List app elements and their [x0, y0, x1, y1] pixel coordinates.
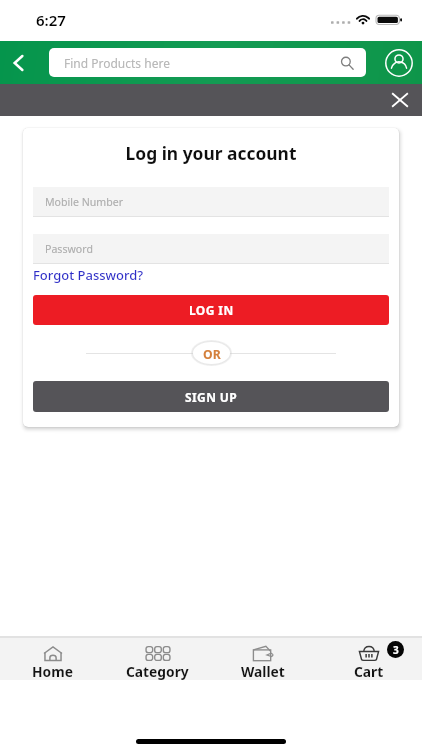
staticText: Find Products here: [64, 55, 170, 71]
staticText: Home: [32, 662, 73, 680]
button[interactable]: Forgot Password?: [33, 266, 144, 284]
staticText: 6:27: [36, 10, 66, 30]
button[interactable]: SIGN UP: [33, 381, 389, 412]
staticText: Cart: [354, 662, 384, 680]
staticText: Category: [126, 662, 189, 680]
button[interactable]: LOG IN: [33, 295, 389, 325]
button[interactable]: Back: [0, 41, 36, 84]
button[interactable]: Mobile Number: [33, 187, 389, 217]
button[interactable]: Wallet: [210, 638, 316, 680]
button[interactable]: Find Products here: [49, 48, 366, 77]
staticText: SIGN UP: [185, 389, 238, 405]
button[interactable]: Password: [33, 234, 389, 264]
button[interactable]: Category: [105, 638, 210, 680]
button[interactable]: Home: [0, 638, 105, 680]
staticText: Log in your account: [23, 141, 399, 165]
staticText: OR: [203, 346, 221, 363]
button[interactable]: Account: [384, 48, 414, 78]
button[interactable]: Cart: [316, 638, 422, 680]
staticText: Mobile Number: [45, 195, 124, 209]
staticText: 3: [393, 643, 399, 657]
staticText: LOG IN: [189, 302, 234, 318]
button[interactable]: Close: [384, 84, 416, 116]
staticText: Password: [45, 242, 93, 256]
staticText: Wallet: [241, 662, 285, 680]
